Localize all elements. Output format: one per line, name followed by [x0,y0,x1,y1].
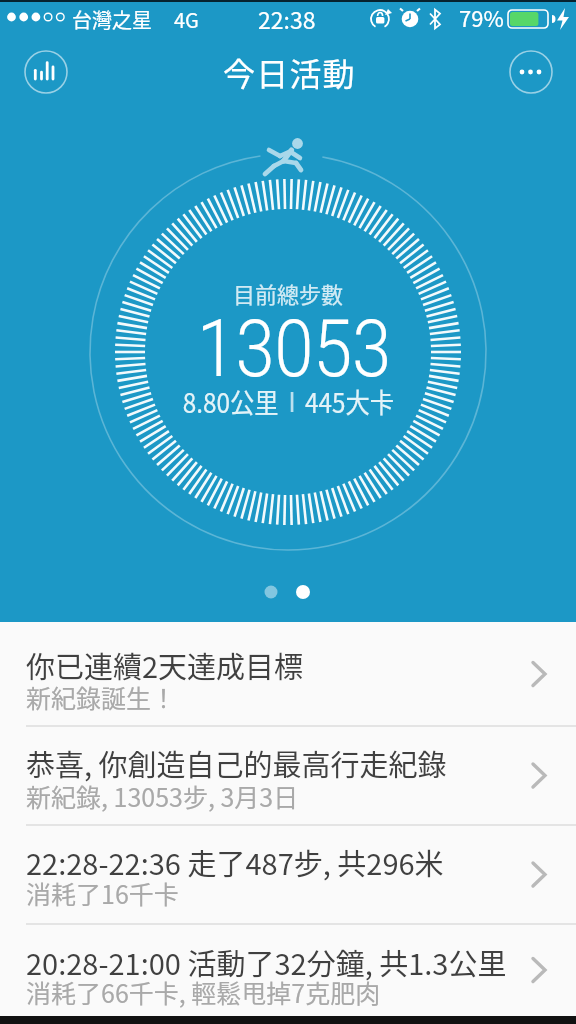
staticText: 消耗了66千卡, 輕鬆甩掉7克肥肉 [26,974,381,1010]
staticText: 8.80公里 [183,382,279,421]
staticText: 445大卡 [305,382,394,421]
staticText: 消耗了16千卡 [26,875,179,911]
staticText: 13053 [197,302,391,396]
staticText: 4G [174,5,199,34]
staticText: 目前總步數 [233,277,344,309]
staticText: 台灣之星 [72,5,152,34]
button[interactable]: 你已連續2天達成目標 [0,622,576,726]
staticText: 22:28-22:36 走了487步, 共296米 [26,841,444,883]
staticText: 22:38 [258,2,316,35]
button[interactable] [510,51,552,93]
button[interactable]: 22:28-22:36 走了487步, 共296米 [0,825,576,924]
staticText: 新紀錄誕生！ [26,679,177,715]
staticText: 新紀錄, 13053步, 3月3日 [26,778,299,814]
button[interactable] [25,51,67,93]
staticText: 20:28-21:00 活動了32分鐘, 共1.3公里 [26,941,507,983]
button[interactable]: 恭喜, 你創造自己的最高行走紀錄 [0,726,576,825]
staticText: 今日活動 [223,49,356,95]
staticText: 你已連續2天達成目標 [26,644,304,686]
staticText: 恭喜, 你創造自己的最高行走紀錄 [26,742,447,784]
button[interactable]: 20:28-21:00 活動了32分鐘, 共1.3公里 [0,924,576,1016]
staticText: 79% [459,1,504,33]
